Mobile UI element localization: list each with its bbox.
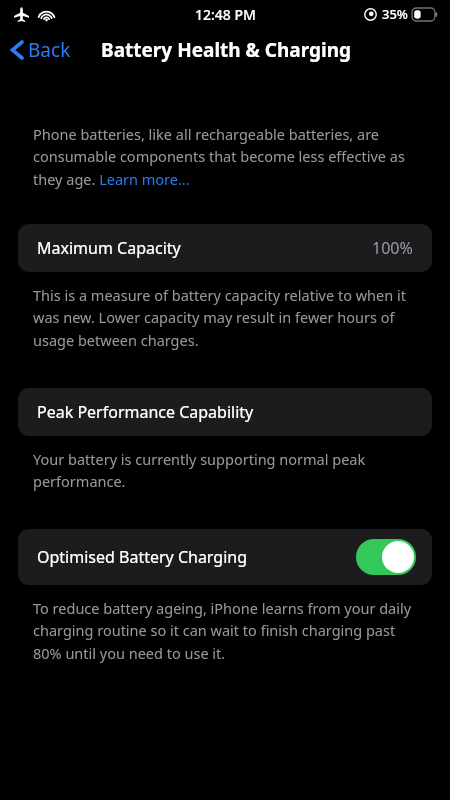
staticText: Maximum Capacity: [37, 237, 181, 259]
staticText: 100%: [372, 237, 413, 259]
staticText: 35%: [382, 5, 408, 23]
button[interactable]: Back: [0, 31, 79, 69]
staticText: To reduce battery ageing, iPhone learns …: [33, 598, 424, 663]
button[interactable]: Peak Performance Capability: [18, 388, 432, 436]
staticText: Your battery is currently supporting nor…: [33, 449, 424, 491]
staticText: Optimised Battery Charging: [37, 546, 248, 568]
button[interactable]: Maximum Capacity: [18, 224, 432, 272]
staticText: 12:48 PM: [195, 5, 256, 24]
staticText: This is a measure of battery capacity re…: [33, 285, 424, 350]
staticText: Peak Performance Capability: [37, 401, 254, 423]
button[interactable]: Optimised Battery Charging: [18, 529, 432, 585]
button[interactable]: Optimised Battery Charging toggle: [356, 539, 416, 575]
staticText: Back: [28, 37, 71, 63]
staticText: Phone batteries, like all rechargeable b…: [33, 124, 424, 189]
staticText: Battery Health & Charging: [101, 37, 352, 63]
